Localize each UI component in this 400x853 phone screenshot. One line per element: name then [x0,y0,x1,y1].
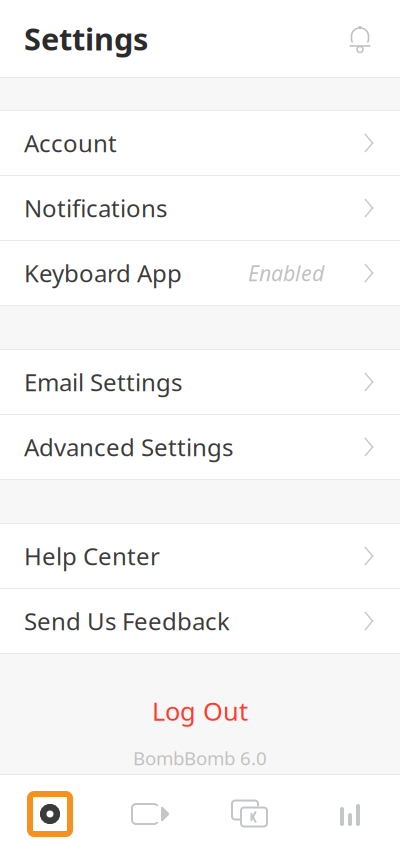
button[interactable]: Notifications [338,16,382,60]
button[interactable]: Notifications [0,176,400,241]
button[interactable]: Settings [0,775,100,853]
button[interactable]: Account [0,111,400,176]
button[interactable]: Videos [200,775,300,853]
button[interactable]: Send Us Feedback [0,589,400,653]
staticText: Notifications [24,192,167,224]
staticText: Keyboard App [24,257,182,289]
button[interactable]: Log Out [0,682,400,740]
staticText: Log Out [152,694,248,728]
staticText: Advanced Settings [24,431,233,463]
staticText: Account [24,127,117,159]
button[interactable]: Advanced Settings [0,415,400,479]
button[interactable]: Record [100,775,200,853]
staticText: Enabled [248,259,324,287]
staticText: Email Settings [24,366,182,398]
staticText: Settings [24,18,148,59]
staticText: Send Us Feedback [24,605,230,637]
button[interactable]: Keyboard App [0,241,400,305]
button[interactable]: Help Center [0,524,400,589]
staticText: Help Center [24,540,160,572]
button[interactable]: Email Settings [0,350,400,415]
staticText: BombBomb 6.0 [133,746,267,770]
button[interactable]: Analytics [300,775,400,853]
